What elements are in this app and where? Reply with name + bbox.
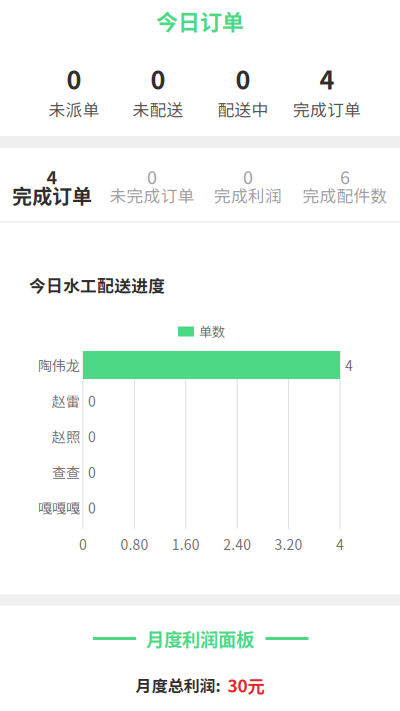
staticText: 0	[235, 60, 250, 97]
staticText: 0	[66, 60, 81, 97]
staticText: 完成配件数	[302, 183, 387, 207]
staticText: 赵雷	[52, 390, 80, 411]
button[interactable]: 4	[0, 0, 400, 711]
staticText: 30元	[227, 672, 264, 698]
staticText: 陶伟龙	[38, 355, 80, 375]
staticText: 配送中	[217, 97, 268, 121]
button[interactable]: 0	[0, 0, 400, 711]
staticText: 今日订单	[156, 5, 244, 37]
staticText: 未配送	[132, 97, 183, 121]
staticText: 0	[88, 497, 96, 518]
staticText: 0	[88, 426, 96, 446]
staticText: 未派单	[48, 97, 99, 121]
staticText: 嘎嘎嘎	[38, 497, 80, 518]
staticText: 0	[147, 163, 157, 190]
button[interactable]: 0	[0, 0, 400, 711]
staticText: 完成订单	[12, 180, 92, 209]
staticText: 1.60	[172, 534, 200, 554]
staticText: 0	[88, 462, 96, 482]
staticText: 赵照	[52, 426, 80, 446]
button[interactable]: 4	[0, 0, 400, 711]
staticText: 4	[345, 355, 353, 375]
staticText: 月度利润面板	[146, 625, 254, 652]
staticText: 单数	[199, 321, 225, 341]
button[interactable]: 0	[0, 0, 400, 711]
staticText: 0	[79, 534, 87, 554]
staticText: 完成订单	[293, 97, 361, 121]
button[interactable]: 6	[0, 0, 400, 711]
staticText: 4	[336, 534, 344, 554]
staticText: 未完成订单	[109, 183, 194, 207]
staticText: 2.40	[223, 534, 251, 554]
staticText: 0.80	[120, 534, 148, 554]
staticText: 0	[243, 163, 253, 190]
staticText: 4	[319, 60, 334, 97]
staticText: 完成利润	[214, 183, 282, 207]
button[interactable]: 0	[0, 0, 400, 711]
staticText: 3.20	[275, 534, 303, 554]
staticText: 4	[46, 163, 57, 190]
button[interactable]: 0	[0, 0, 400, 711]
staticText: 月度总利润:	[135, 673, 220, 697]
staticText: 0	[150, 60, 165, 97]
staticText: 查查	[52, 462, 80, 482]
staticText: 今日水工配送进度	[29, 273, 165, 297]
staticText: 6	[340, 163, 350, 190]
staticText: 0	[88, 390, 96, 411]
